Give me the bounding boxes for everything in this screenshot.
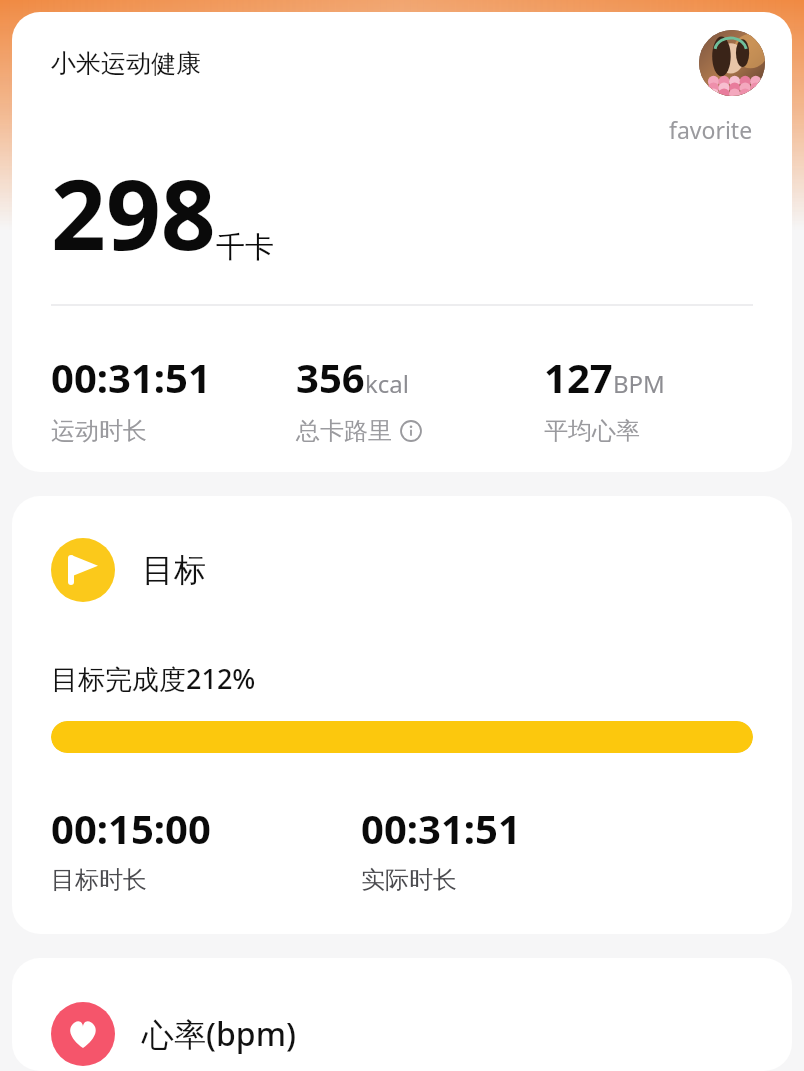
staticText: 运动时长 xyxy=(51,416,147,446)
staticText: 平均心率 xyxy=(544,416,640,446)
staticText: 127 xyxy=(544,350,613,404)
staticText: 千卡 xyxy=(216,229,274,266)
button[interactable]: 小米运动健康 xyxy=(51,48,201,79)
button[interactable]: 目标 xyxy=(12,538,792,602)
staticText: 298 xyxy=(51,147,216,278)
other: Info xyxy=(400,420,422,442)
button[interactable] xyxy=(51,721,753,753)
button[interactable]: Profile xyxy=(699,30,765,96)
staticText: kcal xyxy=(365,367,409,400)
staticText: 目标完成度212% xyxy=(51,660,256,697)
button[interactable]: 心率(bpm) xyxy=(12,958,792,1066)
button[interactable]: 00:31:51 xyxy=(51,350,296,446)
button[interactable]: 00:31:51 xyxy=(361,801,671,895)
staticText: BPM xyxy=(613,367,665,400)
staticText: 总卡路里 xyxy=(296,416,392,446)
staticText: 目标时长 xyxy=(51,865,147,895)
button[interactable]: favorite xyxy=(669,114,753,145)
button[interactable]: 00:15:00 xyxy=(51,801,361,895)
staticText: 356 xyxy=(296,350,365,404)
staticText: 00:15:00 xyxy=(51,801,211,855)
button[interactable]: 356 xyxy=(296,350,544,446)
staticText: 00:31:51 xyxy=(51,350,211,404)
staticText: 心率(bpm) xyxy=(142,1012,296,1056)
staticText: 目标 xyxy=(142,550,206,590)
staticText: 00:31:51 xyxy=(361,801,521,855)
button[interactable]: 127 xyxy=(544,350,744,446)
staticText: 实际时长 xyxy=(361,865,457,895)
